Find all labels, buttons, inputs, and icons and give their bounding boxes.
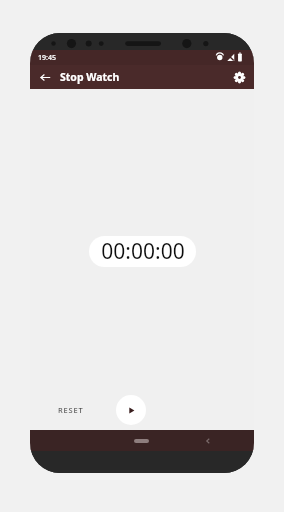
button[interactable]: Start [116,395,146,425]
button[interactable]: 00:00:00 [89,236,196,267]
staticText: Stop Watch [60,70,120,84]
button[interactable]: RESET [54,402,88,418]
button[interactable]: Settings [231,69,247,85]
button[interactable]: Home [130,433,152,449]
staticText: RESET [58,405,84,415]
button[interactable]: Back [200,433,216,449]
staticText: 19:45 [38,53,56,63]
staticText: 00:00:00 [101,237,185,266]
button[interactable]: Back [37,69,53,85]
